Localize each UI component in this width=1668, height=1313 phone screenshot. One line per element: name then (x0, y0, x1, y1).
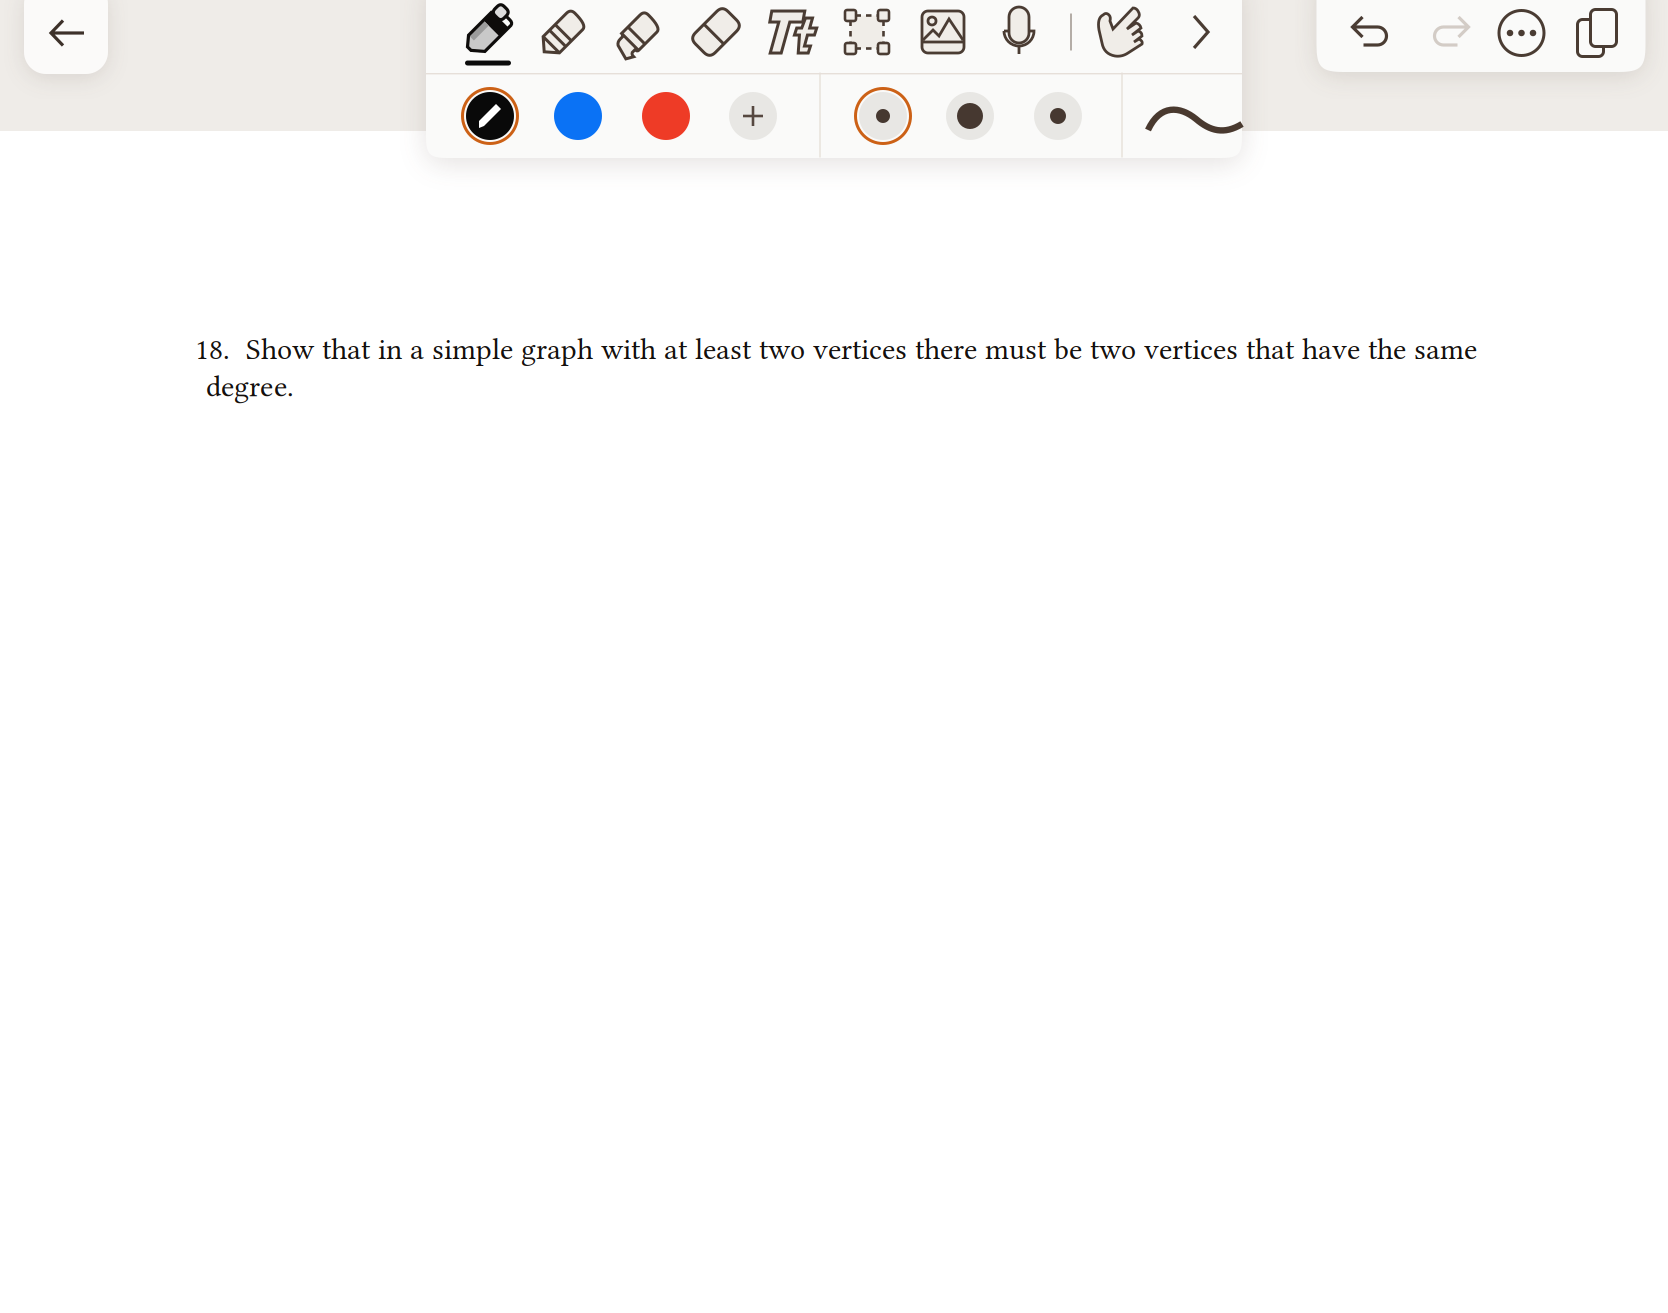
button[interactable]: More (1483, 0, 1559, 69)
staticText: degree. (206, 369, 294, 404)
button[interactable]: Insert image (906, 0, 980, 67)
button[interactable]: Undo (1332, 0, 1408, 69)
button[interactable]: Blue ink (545, 83, 611, 149)
button[interactable]: Thick stroke (1025, 83, 1091, 149)
staticText: 18. Show that in a simple graph with at … (195, 332, 1477, 366)
button[interactable]: Select (830, 0, 904, 67)
button[interactable]: Pages (1559, 0, 1635, 69)
button[interactable]: More tools (1164, 0, 1238, 67)
button[interactable]: Thin stroke (850, 83, 916, 149)
button[interactable]: Text (754, 0, 828, 67)
button[interactable]: Hand (1082, 0, 1156, 67)
button[interactable]: Eraser (679, 0, 753, 67)
button[interactable]: Redo (1412, 0, 1488, 69)
button[interactable]: Black ink (457, 83, 523, 149)
button[interactable]: Red ink (633, 83, 699, 149)
button[interactable]: Highlighter (603, 0, 677, 67)
button[interactable]: Pencil (527, 0, 601, 67)
button[interactable]: Back (25, 0, 107, 74)
button[interactable]: Record audio (982, 0, 1056, 67)
button[interactable]: Medium stroke (937, 83, 1003, 149)
button[interactable]: Add colour (720, 83, 786, 149)
button[interactable]: Pen (451, 0, 525, 67)
